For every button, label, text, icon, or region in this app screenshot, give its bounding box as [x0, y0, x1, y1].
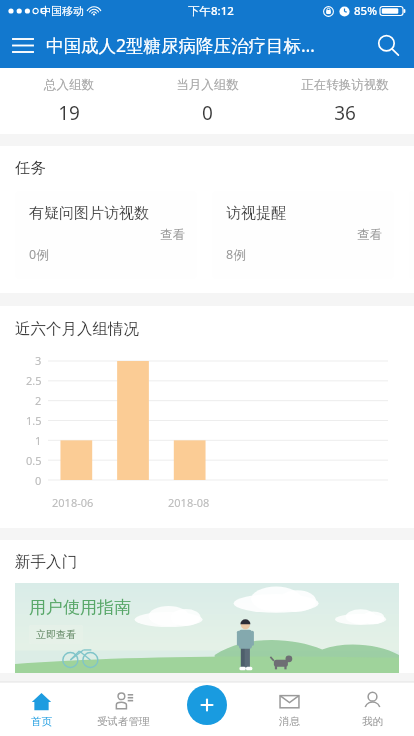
staticText: 立即查看	[36, 628, 76, 641]
staticText: 2018-08	[168, 495, 210, 510]
staticText: 1	[35, 433, 42, 448]
staticText: 任务	[15, 158, 46, 178]
staticText: 0例	[29, 246, 49, 263]
staticText: 2018-06	[52, 495, 94, 510]
button[interactable]: 首页	[0, 682, 82, 736]
staticText: 8例	[226, 246, 246, 263]
staticText: 首页	[31, 715, 52, 728]
button[interactable]: Search	[362, 22, 414, 68]
staticText: 受试者管理	[97, 715, 150, 728]
staticText: 1.5	[26, 413, 42, 428]
button[interactable]: Menu	[0, 22, 46, 68]
staticText: 19	[58, 100, 80, 126]
button[interactable]: 受试者管理	[82, 682, 165, 736]
staticText: 正在转换访视数	[301, 77, 389, 93]
button[interactable]: 有疑问图片访视数	[15, 191, 197, 279]
button[interactable]: 用户使用指南	[15, 583, 399, 673]
staticText: 36	[334, 100, 356, 126]
staticText: 下午8:12	[188, 3, 234, 19]
staticText: 85%	[354, 3, 377, 19]
button[interactable]: Add	[187, 685, 227, 725]
staticText: 我的	[362, 715, 383, 728]
staticText: 0.5	[26, 453, 42, 468]
staticText: 3	[35, 353, 42, 368]
button[interactable]: 总入组数	[0, 68, 138, 134]
staticText: 中国成人2型糖尿病降压治疗目标…	[46, 33, 362, 57]
staticText: 有疑问图片访视数	[29, 204, 149, 223]
staticText: 当月入组数	[176, 77, 239, 93]
staticText: 新手入门	[15, 552, 77, 572]
staticText: 2.5	[26, 373, 42, 388]
staticText: 总入组数	[44, 77, 94, 93]
staticText: 近六个月入组情况	[15, 319, 139, 339]
staticText: 中国移动	[40, 4, 84, 18]
staticText: 查看	[357, 227, 382, 243]
staticText: 0	[35, 473, 42, 488]
staticText: 用户使用指南	[29, 597, 131, 618]
staticText: 0	[202, 100, 213, 126]
button[interactable]: 正在转换访视数	[276, 68, 414, 134]
staticText: 消息	[279, 715, 300, 728]
button[interactable]: 消息	[248, 682, 331, 736]
button[interactable]: 当月入组数	[138, 68, 276, 134]
staticText: 查看	[160, 227, 185, 243]
button[interactable]: 我的	[331, 682, 414, 736]
staticText: 2	[35, 393, 42, 408]
staticText: 访视提醒	[226, 204, 286, 223]
button[interactable]: 访视提醒	[212, 191, 394, 279]
button[interactable]: 立即查看	[36, 628, 76, 641]
